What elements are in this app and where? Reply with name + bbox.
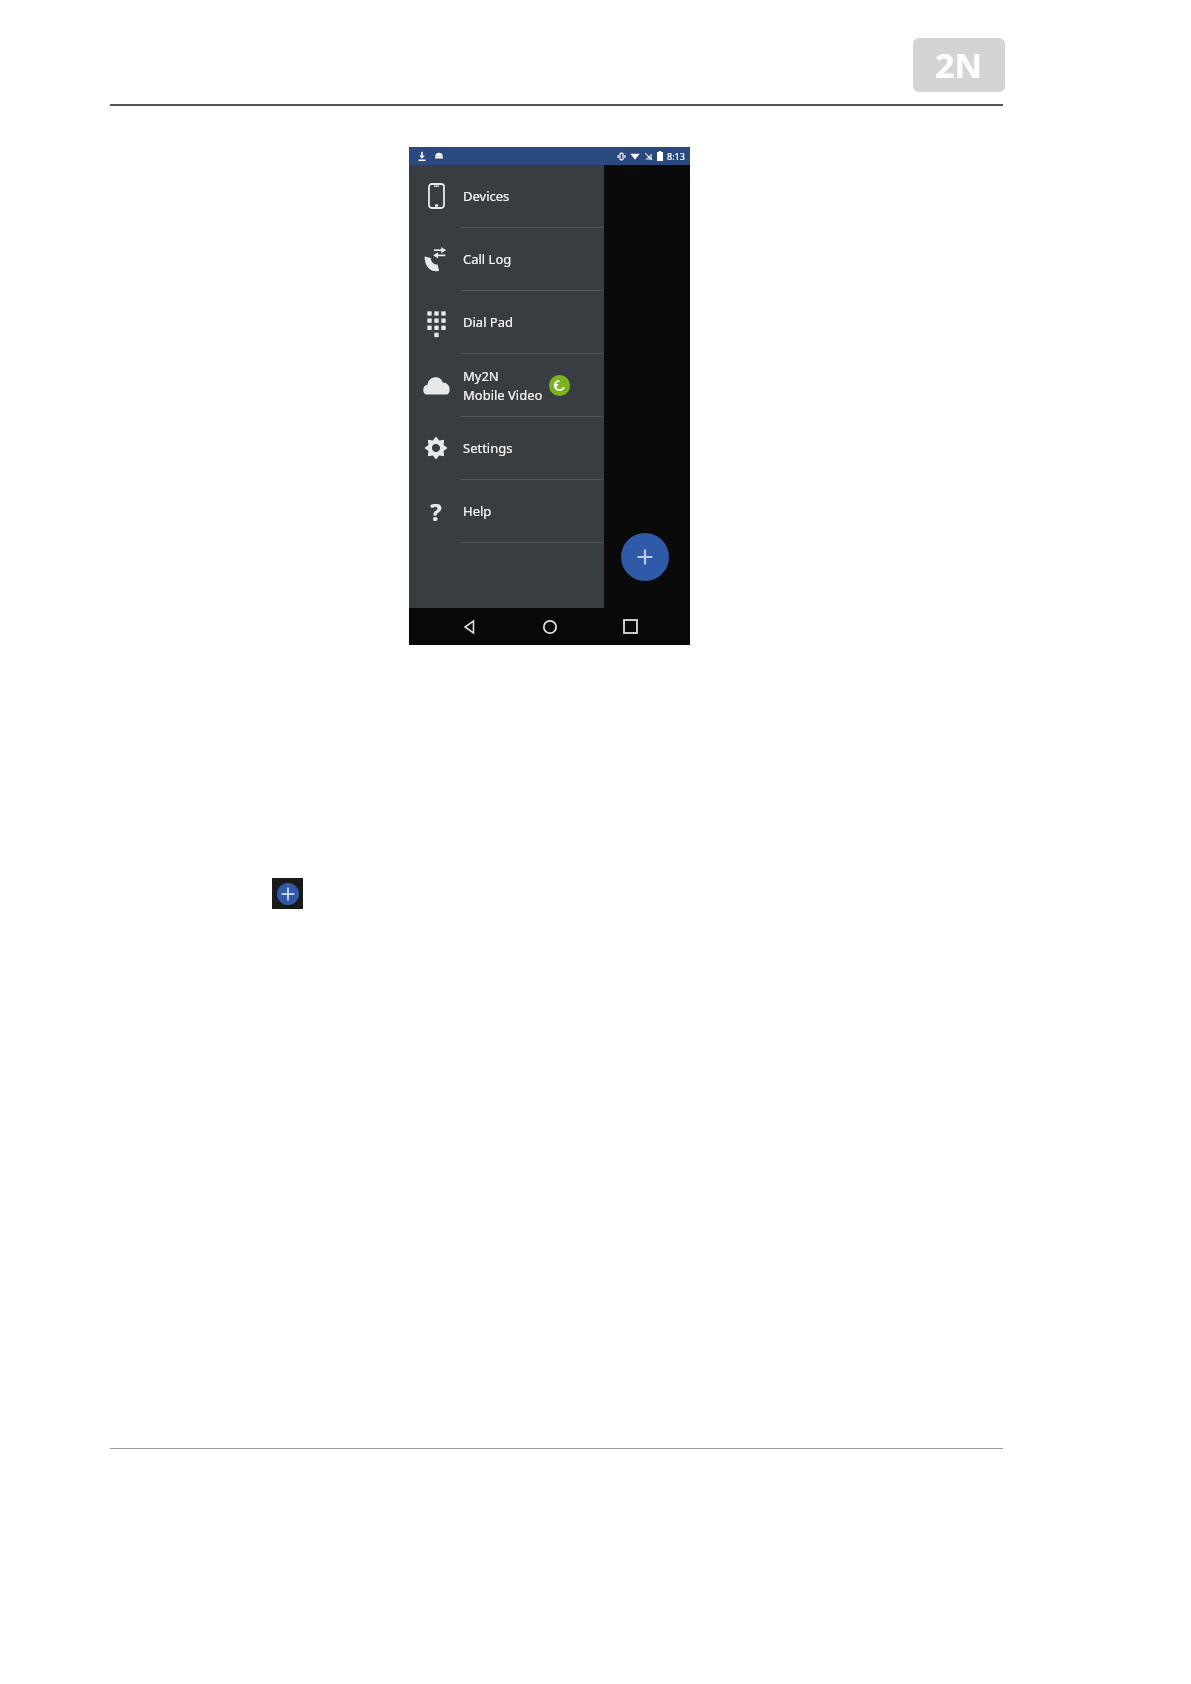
staticText: Settings (463, 439, 513, 457)
button[interactable]: Recent apps (610, 608, 650, 645)
staticText: My2N (463, 367, 499, 385)
button[interactable]: Back (449, 608, 489, 645)
button[interactable]: ? (409, 480, 604, 543)
button[interactable]: Call Log (409, 228, 604, 291)
button[interactable]: Home (530, 608, 570, 645)
button[interactable]: Add (272, 878, 303, 909)
staticText: Call Log (463, 250, 512, 268)
staticText: 8:13 (667, 150, 685, 162)
staticText: Help (463, 502, 492, 520)
staticText: 2N (935, 42, 983, 88)
button[interactable]: Settings (409, 417, 604, 480)
other: 2N logo (913, 38, 1005, 92)
staticText: Mobile Video (463, 386, 543, 404)
button[interactable]: Devices (409, 165, 604, 228)
button[interactable]: Dial Pad (409, 291, 604, 354)
button[interactable]: My2N (409, 354, 604, 417)
staticText: Devices (463, 187, 510, 205)
staticText: ? (430, 495, 442, 528)
staticText: Dial Pad (463, 313, 514, 331)
button[interactable]: Add device (621, 533, 669, 581)
